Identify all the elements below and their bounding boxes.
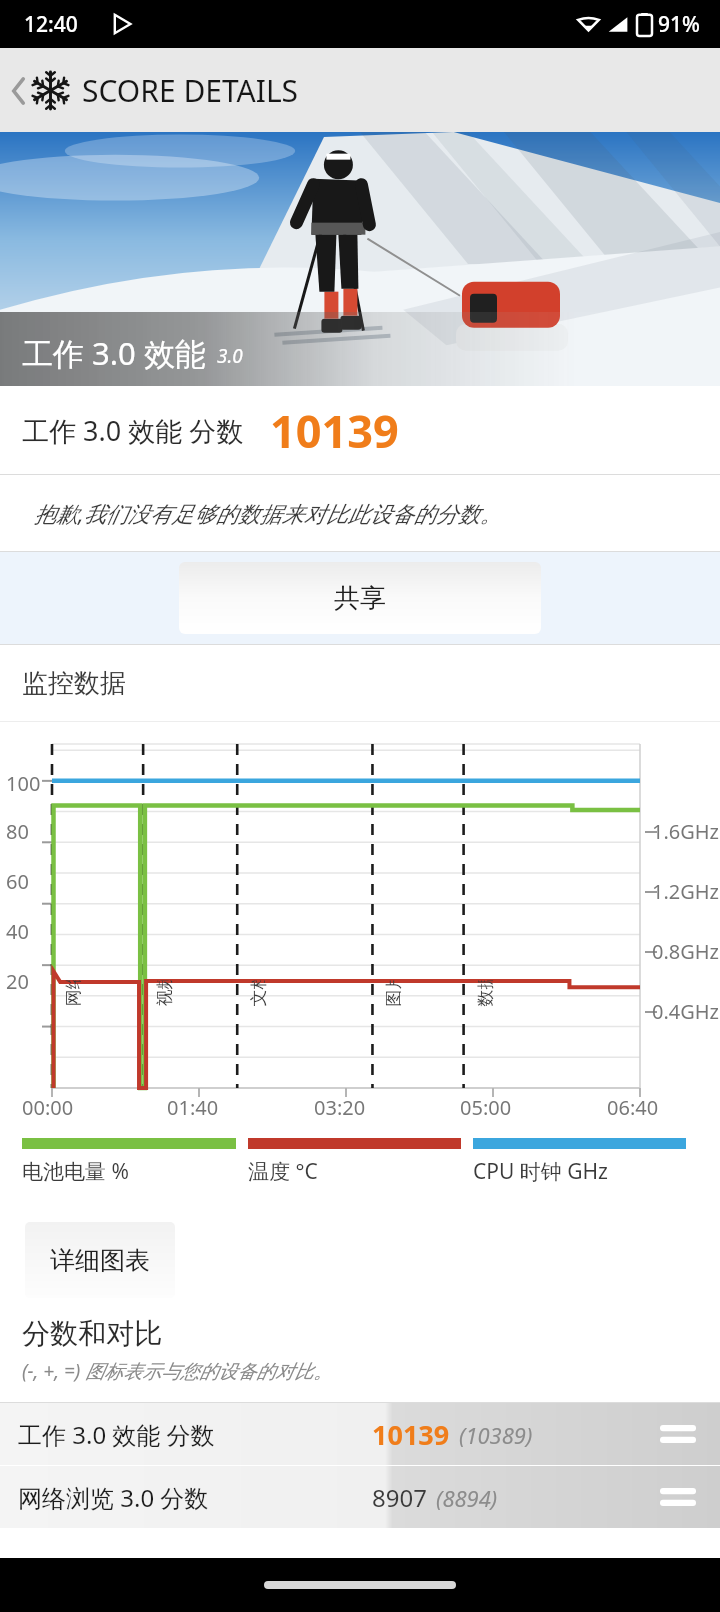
staticText: 1.2GHz <box>652 878 720 905</box>
staticText: 视频编辑 3.0 <box>151 980 174 1006</box>
staticText: 3.0 <box>217 343 243 369</box>
staticText: 网络浏览 3.0 分数 <box>18 1481 209 1514</box>
staticText: 工作 3.0 效能 分数 <box>22 412 244 449</box>
other: Equal to your device <box>660 1485 696 1509</box>
staticText: 10139 <box>372 1416 450 1453</box>
button[interactable]: 网络浏览 3.0 分数 <box>0 1466 720 1528</box>
staticText: 详细图表 <box>50 1245 150 1276</box>
staticText: 80 <box>6 818 29 845</box>
staticText: 网络浏览 3.0 <box>60 980 83 1006</box>
staticText: 工作 3.0 效能 分数 <box>18 1418 215 1451</box>
staticText: (10389) <box>459 1420 533 1450</box>
staticText: 温度 °C <box>248 1157 318 1186</box>
staticText: (8894) <box>436 1483 498 1513</box>
staticText: 01:40 <box>167 1094 219 1121</box>
button[interactable]: Back <box>0 48 720 132</box>
button[interactable]: 工作 3.0 效能 分数 <box>0 1403 720 1465</box>
other: Equal to your device <box>660 1422 696 1446</box>
staticText: 60 <box>6 868 29 895</box>
staticText: SCORE DETAILS <box>82 70 299 111</box>
staticText: 工作 3.0 效能 <box>22 332 206 374</box>
staticText: 抱歉,我们没有足够的数据来对比此设备的分数。 <box>34 498 502 528</box>
staticText: (-, +, =) 图标表示与您的设备的对比。 <box>22 1358 333 1384</box>
staticText: 共享 <box>334 582 386 615</box>
staticText: 03:20 <box>314 1094 366 1121</box>
staticText: 0.4GHz <box>652 998 720 1025</box>
staticText: 06:40 <box>607 1094 659 1121</box>
staticText: 100 <box>6 770 41 797</box>
staticText: 0.8GHz <box>652 938 720 965</box>
staticText: 91% <box>658 10 700 39</box>
staticText: 数据操作 3.0 <box>472 980 495 1006</box>
staticText: 监控数据 <box>22 667 126 700</box>
staticText: 图片编辑 3.0 <box>380 980 403 1006</box>
staticText: 1.6GHz <box>652 818 720 845</box>
staticText: 电池电量 % <box>22 1157 129 1186</box>
staticText: 05:00 <box>460 1094 512 1121</box>
staticText: 分数和对比 <box>22 1316 162 1351</box>
button[interactable]: 详细图表 <box>25 1222 175 1298</box>
button[interactable]: 共享 <box>179 562 541 634</box>
staticText: 8907 <box>372 1481 427 1514</box>
staticText: 40 <box>6 918 29 945</box>
staticText: 文档编写 3.0 <box>245 980 268 1006</box>
staticText: 10139 <box>270 400 399 461</box>
staticText: 12:40 <box>24 10 78 39</box>
staticText: 00:00 <box>22 1094 74 1121</box>
staticText: 20 <box>6 968 29 995</box>
staticText: CPU 时钟 GHz <box>473 1157 608 1186</box>
